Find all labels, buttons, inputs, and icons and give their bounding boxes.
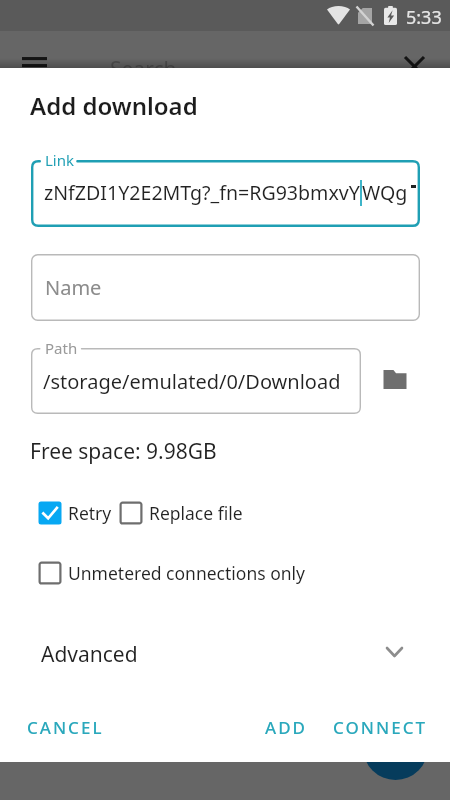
button[interactable]: Close search <box>405 57 424 76</box>
button[interactable]: ADD <box>255 706 317 749</box>
staticText: WQg <box>362 179 408 206</box>
button[interactable]: Retry <box>35 497 112 529</box>
button[interactable]: Open navigation menu <box>10 53 58 90</box>
button[interactable]: Unmetered connections only <box>35 557 305 589</box>
staticText: Name <box>45 274 102 301</box>
button[interactable]: Replace file <box>116 497 243 529</box>
staticText: 5:33 <box>406 5 442 30</box>
staticText: Link <box>45 150 75 170</box>
button[interactable]: zNfZDI1Y2E2MTg?_fn=RG93bmxvY <box>31 160 420 227</box>
staticText: ADD <box>265 716 307 739</box>
staticText: CANCEL <box>27 716 104 739</box>
staticText: Add download <box>30 89 198 122</box>
button[interactable]: Name <box>31 254 420 321</box>
button[interactable]: Choose folder <box>373 357 417 401</box>
button[interactable]: /storage/emulated/0/Download <box>31 348 361 414</box>
staticText: Path <box>45 338 78 358</box>
button[interactable]: CONNECT <box>323 706 437 749</box>
staticText: Unmetered connections only <box>68 561 305 585</box>
staticText: Search <box>110 55 177 84</box>
button[interactable]: Advanced <box>0 630 450 678</box>
staticText: /storage/emulated/0/Download <box>43 368 341 395</box>
staticText: Free space: 9.98GB <box>30 437 217 466</box>
staticText: Replace file <box>149 501 243 525</box>
staticText: Advanced <box>41 640 138 669</box>
staticText: zNfZDI1Y2E2MTg?_fn=RG93bmxvY <box>44 179 360 206</box>
button[interactable]: CANCEL <box>17 706 114 749</box>
button[interactable]: New download <box>363 715 428 780</box>
staticText: Retry <box>68 501 112 525</box>
staticText: CONNECT <box>333 716 427 739</box>
